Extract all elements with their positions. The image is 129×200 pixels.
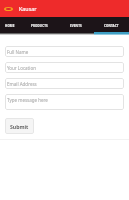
staticText: Full Name <box>7 49 29 55</box>
staticText: PRODUCTS <box>31 24 48 28</box>
staticText: EVENTS <box>70 24 82 28</box>
button[interactable]: EVENTS <box>58 17 94 33</box>
staticText: HOME <box>5 24 15 28</box>
button[interactable]: Submit <box>5 118 34 134</box>
button[interactable]: Full Name <box>5 46 124 57</box>
button[interactable]: Type message here <box>5 94 124 110</box>
other: Kausar logo <box>4 7 13 11</box>
button[interactable]: Your Location <box>5 62 124 73</box>
staticText: Kausar <box>19 5 37 12</box>
button[interactable]: HOME <box>0 17 20 33</box>
staticText: Email Address <box>7 81 37 87</box>
staticText: Type message here <box>7 97 48 103</box>
staticText: CONTACT <box>104 24 119 28</box>
staticText: Your Location <box>7 65 36 71</box>
button[interactable]: PRODUCTS <box>20 17 58 33</box>
button[interactable]: Email Address <box>5 78 124 89</box>
button[interactable]: Kausar logo <box>4 5 37 12</box>
button[interactable]: CONTACT <box>94 17 129 33</box>
staticText: Submit <box>10 123 29 130</box>
